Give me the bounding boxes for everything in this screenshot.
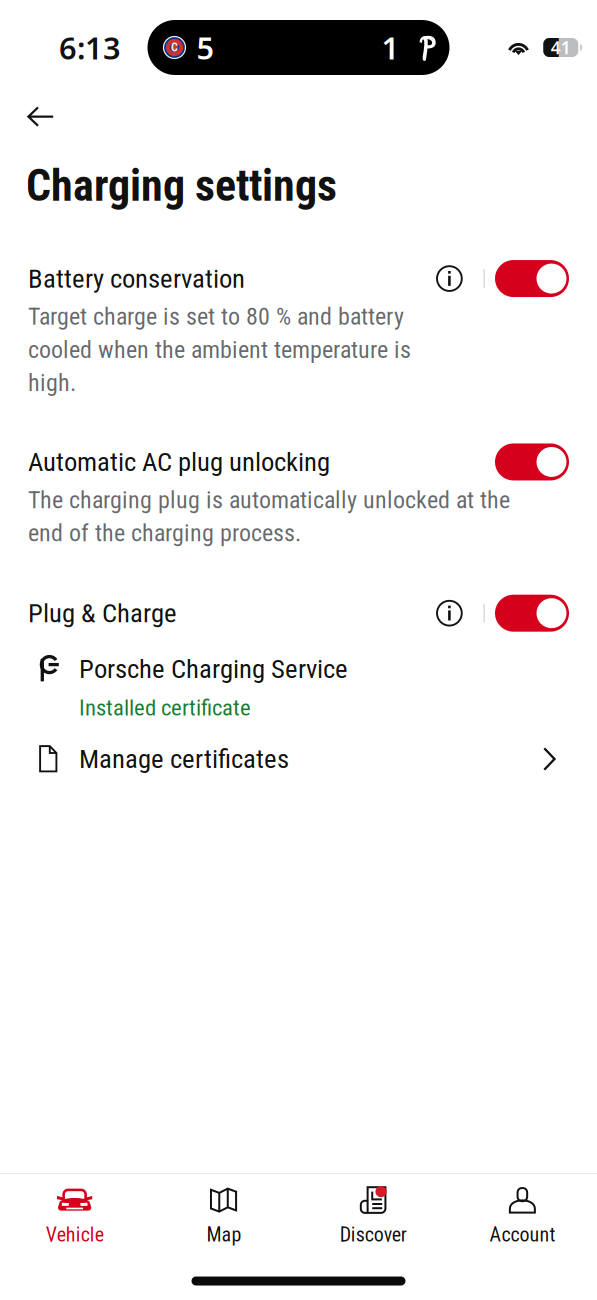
- staticText: C: [171, 40, 178, 55]
- button[interactable]: Account: [448, 1174, 597, 1262]
- button[interactable]: More information about Plug & Charge: [427, 591, 471, 635]
- button[interactable]: Discover: [298, 1174, 448, 1262]
- button[interactable]: Map: [149, 1174, 298, 1262]
- staticText: Automatic AC plug unlocking: [28, 446, 330, 478]
- staticText: cooled when the ambient temperature is: [28, 336, 411, 364]
- staticText: Plug & Charge: [28, 598, 177, 629]
- staticText: Battery conservation: [28, 263, 245, 294]
- staticText: high.: [28, 369, 76, 397]
- staticText: Map: [206, 1223, 241, 1246]
- button[interactable]: Automatic AC plug unlocking, on: [495, 443, 569, 480]
- staticText: Porsche Charging Service: [79, 653, 348, 684]
- staticText: 6:13: [59, 27, 121, 68]
- staticText: 1: [381, 27, 399, 68]
- staticText: end of the charging process.: [28, 519, 301, 547]
- staticText: Manage certificates: [79, 743, 289, 775]
- staticText: The charging plug is automatically unloc…: [28, 486, 510, 514]
- staticText: Account: [489, 1223, 555, 1246]
- staticText: Charging settings: [26, 160, 337, 212]
- staticText: Target charge is set to 80 % and battery: [28, 303, 404, 331]
- staticText: Discover: [340, 1223, 407, 1246]
- button[interactable]: Back: [13, 93, 69, 141]
- button[interactable]: Battery conservation, on: [495, 260, 569, 297]
- staticText: Installed certificate: [79, 694, 251, 721]
- button[interactable]: Plug & Charge, on: [495, 595, 569, 632]
- staticText: 41: [551, 36, 571, 59]
- button[interactable]: Porsche Charging Service: [28, 653, 569, 721]
- button[interactable]: Vehicle: [0, 1174, 149, 1262]
- button[interactable]: Manage certificates: [28, 744, 569, 774]
- staticText: 5: [196, 27, 214, 68]
- button[interactable]: More information about Battery conservat…: [427, 257, 471, 301]
- staticText: Vehicle: [46, 1223, 104, 1246]
